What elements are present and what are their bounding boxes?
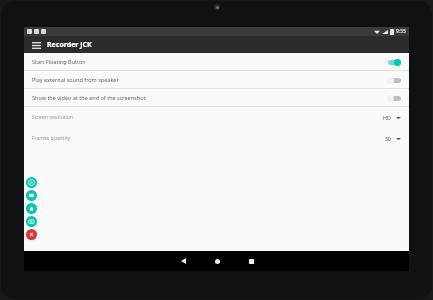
- button[interactable]: Open navigation menu: [29, 38, 43, 52]
- button[interactable]: Stop: [26, 190, 37, 201]
- staticText: Show the video at the end of the screens…: [32, 94, 387, 101]
- staticText: HD: [382, 114, 391, 121]
- button[interactable]: Frames quantity: [24, 128, 409, 149]
- staticText: Play external sound from speaker: [32, 76, 387, 83]
- button[interactable]: Screenshot: [26, 203, 37, 214]
- button[interactable]: Home: [200, 251, 234, 271]
- staticText: 9:55: [396, 28, 406, 35]
- staticText: Recorder JCK: [47, 40, 92, 50]
- staticText: Screen resolution: [32, 114, 382, 121]
- button[interactable]: On: [387, 58, 401, 66]
- button[interactable]: Screen resolution: [24, 107, 409, 128]
- button[interactable]: Camera: [26, 216, 37, 227]
- button[interactable]: Start Floating Button: [24, 53, 409, 70]
- button[interactable]: Show the video at the end of the screens…: [24, 89, 409, 106]
- button[interactable]: Record: [26, 177, 37, 188]
- button[interactable]: Off: [387, 76, 401, 84]
- button[interactable]: Close: [26, 229, 37, 240]
- staticText: Start Floating Button: [32, 58, 387, 65]
- button[interactable]: Back: [166, 251, 200, 271]
- staticText: 30: [384, 135, 391, 142]
- button[interactable]: Play external sound from speaker: [24, 71, 409, 88]
- button[interactable]: Off: [387, 94, 401, 102]
- staticText: Frames quantity: [32, 135, 384, 142]
- button[interactable]: Recent apps: [234, 251, 268, 271]
